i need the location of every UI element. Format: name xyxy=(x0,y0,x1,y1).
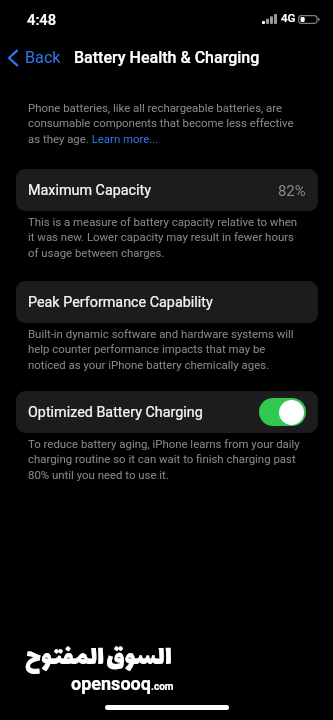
button[interactable]: Maximum Capacity xyxy=(16,169,318,211)
staticText: السوق المفتوح xyxy=(25,636,172,681)
button[interactable]: Peak Performance Capability xyxy=(16,281,318,323)
staticText: To reduce battery aging, iPhone learns f… xyxy=(28,437,304,482)
button[interactable]: Optimized Battery Charging toggle xyxy=(259,398,306,426)
staticText: 4:48 xyxy=(27,11,57,28)
other: Cellular signal xyxy=(262,14,277,24)
staticText: Back xyxy=(25,48,61,67)
staticText: opensooq xyxy=(71,673,151,694)
staticText: Phone batteries, like all rechargeable b… xyxy=(28,101,304,146)
staticText: Built-in dynamic software and hardware s… xyxy=(28,327,304,372)
staticText: Battery Health & Charging xyxy=(74,48,260,67)
staticText: Maximum Capacity xyxy=(28,182,278,199)
staticText: 82% xyxy=(278,182,306,199)
button[interactable]: Optimized Battery Charging xyxy=(16,391,318,433)
staticText: Peak Performance Capability xyxy=(28,294,306,311)
staticText: This is a measure of battery capacity re… xyxy=(28,215,304,260)
button[interactable]: Back xyxy=(4,45,67,70)
staticText: 4G xyxy=(281,11,296,25)
other: Battery level xyxy=(298,15,320,24)
staticText: .com xyxy=(151,681,174,693)
staticText: Optimized Battery Charging xyxy=(28,404,259,421)
